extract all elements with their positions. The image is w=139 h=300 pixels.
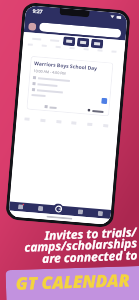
- button[interactable]: GT Calendar: [53, 203, 63, 214]
- staticText: GT CALENDAR: [15, 268, 130, 295]
- button[interactable]: Profile: [28, 22, 36, 31]
- button[interactable]: Home: [15, 202, 25, 212]
- button[interactable]: [77, 37, 89, 47]
- staticText: Warriors Boys School Day: [34, 60, 98, 72]
- button[interactable]: [63, 36, 75, 46]
- button[interactable]: GT CALENDAR: [5, 266, 139, 300]
- button[interactable]: [39, 22, 121, 38]
- button[interactable]: Events: [35, 204, 45, 213]
- button[interactable]: Open event: [101, 98, 108, 104]
- button[interactable]: [45, 35, 64, 45]
- staticText: Invites to trials/ camps/scholarships ar…: [0, 223, 138, 269]
- staticText: 9:27: [32, 8, 43, 15]
- button[interactable]: Messages: [75, 207, 85, 217]
- button[interactable]: [27, 33, 46, 44]
- button[interactable]: Warriors Boys School Day: [26, 56, 113, 116]
- button[interactable]: [91, 39, 103, 49]
- staticText: 10:00 AM - 4:00 PM: [33, 68, 67, 76]
- button[interactable]: Profile: [94, 209, 105, 218]
